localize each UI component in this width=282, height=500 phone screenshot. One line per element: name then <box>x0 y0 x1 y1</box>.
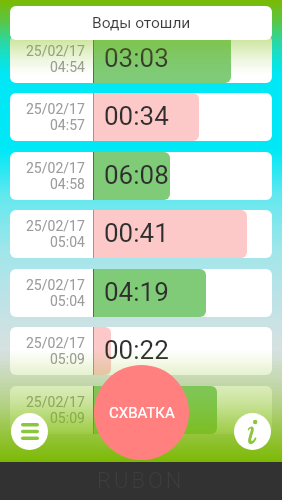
staticText: 25/02/17 <box>26 218 85 234</box>
staticText: 04:54 <box>50 59 85 75</box>
staticText: 04:58 <box>50 176 85 192</box>
staticText: 05:04 <box>50 293 85 309</box>
button[interactable]: 25/02/17 <box>10 210 272 258</box>
button[interactable]: Воды отошли <box>10 6 272 40</box>
button[interactable]: Menu <box>11 413 48 450</box>
staticText: 04:19 <box>104 277 169 307</box>
staticText: 04:57 <box>50 117 85 133</box>
button[interactable]: СХВАТКА <box>94 365 189 460</box>
staticText: 25/02/17 <box>26 335 85 351</box>
button[interactable]: 25/02/17 <box>10 152 272 200</box>
button[interactable]: 25/02/17 <box>10 269 272 317</box>
staticText: 25/02/17 <box>26 43 85 59</box>
button[interactable]: 25/02/17 <box>10 93 272 141</box>
button[interactable]: Info <box>234 413 271 450</box>
staticText: 05:09 <box>50 351 85 367</box>
staticText: 03:03 <box>104 43 169 73</box>
staticText: 05:09 <box>50 410 85 426</box>
button[interactable]: 25/02/17 <box>10 386 272 434</box>
staticText: СХВАТКА <box>109 404 175 422</box>
staticText: 25/02/17 <box>26 160 85 176</box>
button[interactable]: 25/02/17 <box>10 35 272 83</box>
staticText: 06:08 <box>104 160 169 190</box>
staticText: 05:04 <box>50 234 85 250</box>
staticText: 00:41 <box>104 218 169 248</box>
staticText: 25/02/17 <box>26 394 85 410</box>
button[interactable]: 25/02/17 <box>10 327 272 375</box>
staticText: 00:22 <box>104 335 169 365</box>
staticText: 25/02/17 <box>26 101 85 117</box>
staticText: 01:11 <box>104 394 169 424</box>
staticText: Воды отошли <box>92 14 191 32</box>
staticText: 00:34 <box>104 101 169 131</box>
staticText: 25/02/17 <box>26 277 85 293</box>
